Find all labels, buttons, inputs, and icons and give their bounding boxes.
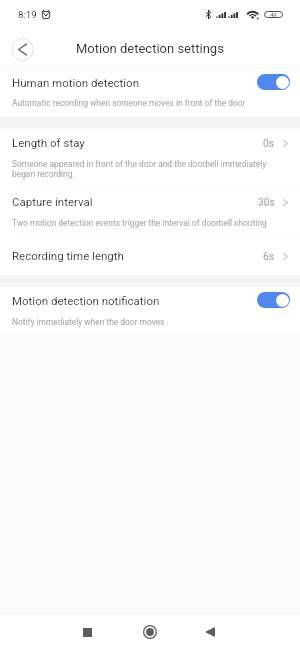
staticText: Two motion detection events trigger the … <box>12 218 267 228</box>
staticText: Capture interval <box>12 195 93 208</box>
button[interactable]: Capture interval <box>0 189 300 236</box>
staticText: Length of stay <box>12 136 85 149</box>
button[interactable]: Toggle <box>257 74 290 90</box>
staticText: Someone appeared in front of the door an… <box>12 159 278 179</box>
staticText: 49 <box>270 11 277 18</box>
staticText: Human motion detection <box>12 76 139 89</box>
staticText: 30s <box>258 196 275 208</box>
button[interactable]: Back <box>194 616 226 648</box>
button[interactable]: Human motion detection <box>0 68 300 117</box>
button[interactable]: Recents <box>71 616 103 648</box>
button[interactable]: Back <box>11 38 34 61</box>
staticText: 6s <box>263 250 275 262</box>
button[interactable]: Toggle <box>257 292 290 308</box>
button[interactable]: Length of stay <box>0 129 300 188</box>
staticText: 0s <box>263 137 275 149</box>
staticText: Motion detection settings <box>76 41 224 56</box>
staticText: Notify immediately when the door moves <box>12 317 165 327</box>
button[interactable]: Recording time length <box>0 237 300 275</box>
staticText: Automatic recording when someone moves i… <box>12 98 246 108</box>
staticText: Motion detection notification <box>12 294 160 307</box>
button[interactable]: Home <box>134 616 166 648</box>
staticText: 8:19 <box>18 9 37 20</box>
button[interactable]: Motion detection notification <box>0 287 300 335</box>
staticText: Recording time length <box>12 249 124 262</box>
